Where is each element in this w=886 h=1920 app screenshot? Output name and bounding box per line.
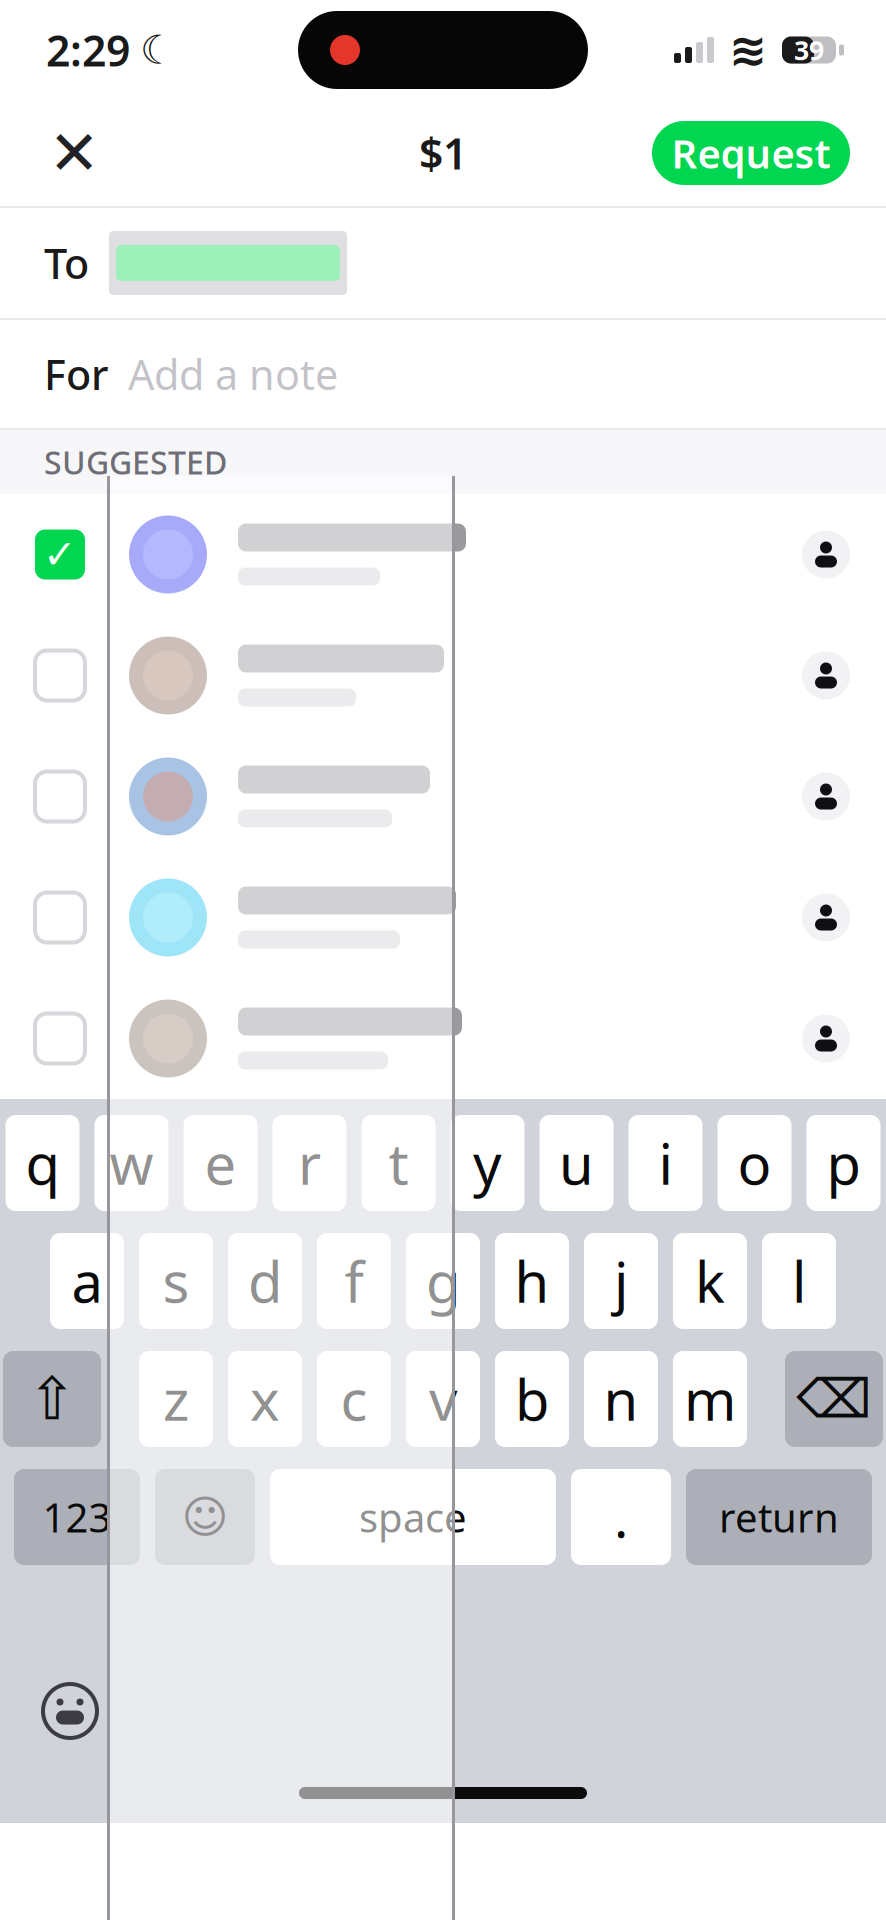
button[interactable]: Close (36, 115, 112, 191)
button[interactable]: For (0, 320, 886, 428)
button[interactable]: t (361, 1115, 435, 1211)
staticText: Request (671, 126, 830, 179)
staticText: k (695, 1244, 725, 1318)
staticText: For (44, 347, 108, 401)
button[interactable]: e (183, 1115, 257, 1211)
staticText: ☺ (181, 1491, 228, 1543)
staticText: To (44, 236, 89, 290)
button[interactable]: b (495, 1351, 569, 1447)
staticText: e (204, 1126, 236, 1200)
button[interactable]: w (94, 1115, 168, 1211)
staticText: l (792, 1244, 806, 1318)
staticText: i (658, 1126, 672, 1200)
staticText: q (25, 1126, 59, 1200)
staticText: a (71, 1244, 102, 1318)
staticText: . (614, 1482, 628, 1552)
button[interactable]: return (686, 1469, 872, 1565)
button[interactable] (0, 615, 886, 736)
staticText: Add a note (128, 347, 338, 401)
staticText: o (737, 1126, 771, 1200)
button[interactable]: 123 (14, 1469, 140, 1565)
button[interactable] (0, 736, 886, 857)
staticText: n (603, 1362, 638, 1436)
button[interactable] (0, 857, 886, 978)
staticText: h (514, 1244, 549, 1318)
button[interactable]: Delete (785, 1351, 883, 1447)
staticText: z (163, 1362, 189, 1436)
button[interactable]: d (228, 1233, 302, 1329)
button[interactable]: Emoji (28, 1669, 112, 1753)
staticText: ⌫ (796, 1369, 871, 1429)
button[interactable]: m (673, 1351, 747, 1447)
button[interactable]: h (495, 1233, 569, 1329)
button[interactable]: p (806, 1115, 880, 1211)
button[interactable]: c (317, 1351, 391, 1447)
staticText: b (515, 1362, 549, 1436)
staticText: ≋ (729, 24, 767, 76)
button[interactable]: Shift (3, 1351, 101, 1447)
staticText: c (340, 1362, 367, 1436)
button[interactable]: r (272, 1115, 346, 1211)
button[interactable]: k (673, 1233, 747, 1329)
staticText: r (298, 1126, 321, 1200)
staticText: ⇧ (27, 1366, 76, 1432)
button[interactable]: z (139, 1351, 213, 1447)
staticText: 2:29 (46, 22, 130, 78)
staticText: p (826, 1126, 860, 1200)
staticText: t (388, 1126, 408, 1200)
button[interactable]: v (406, 1351, 480, 1447)
button[interactable]: l (762, 1233, 836, 1329)
button[interactable]: f (317, 1233, 391, 1329)
staticText: w (109, 1126, 153, 1200)
staticText: g (426, 1244, 460, 1318)
button[interactable]: ✓ (0, 494, 886, 615)
staticText: x (250, 1362, 280, 1436)
button[interactable]: i (628, 1115, 702, 1211)
staticText: ✓ (43, 532, 77, 577)
staticText: return (719, 1490, 839, 1543)
button[interactable]: o (717, 1115, 791, 1211)
button[interactable]: s (139, 1233, 213, 1329)
button[interactable]: ☺ (155, 1469, 255, 1565)
button[interactable]: y (450, 1115, 524, 1211)
staticText: d (248, 1244, 282, 1318)
button[interactable]: x (228, 1351, 302, 1447)
staticText: y (473, 1126, 502, 1200)
button[interactable]: space (270, 1469, 556, 1565)
staticText: m (684, 1362, 736, 1436)
staticText: v (429, 1362, 457, 1436)
staticText: ✕ (48, 118, 99, 188)
staticText: u (559, 1126, 594, 1200)
button[interactable]: . (571, 1469, 671, 1565)
button[interactable]: g (406, 1233, 480, 1329)
button[interactable] (0, 978, 886, 1099)
button[interactable]: Request (652, 121, 850, 185)
staticText: space (359, 1490, 467, 1543)
button[interactable]: j (584, 1233, 658, 1329)
staticText: s (162, 1244, 189, 1318)
button[interactable]: u (539, 1115, 613, 1211)
staticText: f (344, 1244, 363, 1318)
staticText: 39 (794, 32, 824, 68)
staticText: j (614, 1244, 628, 1318)
staticText: $1 (419, 125, 467, 181)
button[interactable]: a (50, 1233, 124, 1329)
button[interactable]: q (5, 1115, 79, 1211)
staticText: 123 (42, 1490, 111, 1543)
button[interactable]: n (584, 1351, 658, 1447)
staticText: SUGGESTED (44, 441, 227, 483)
staticText: ☾ (140, 27, 176, 73)
